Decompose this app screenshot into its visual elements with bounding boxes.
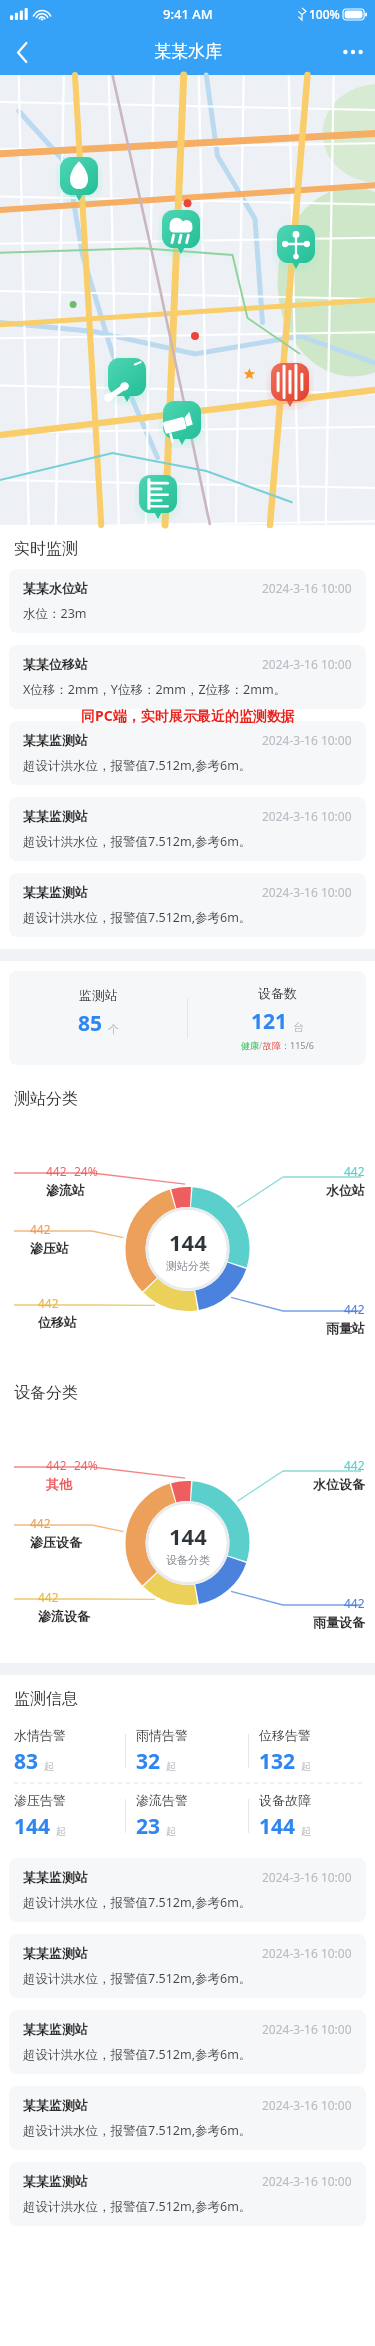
staticText: 某某水库 — [154, 41, 222, 62]
button[interactable]: Back — [0, 30, 44, 74]
staticText: 某某监测站 — [23, 808, 88, 824]
staticText: 位移告警 — [259, 1727, 311, 1743]
staticText: 442 — [38, 1589, 59, 1605]
staticText: 2024-3-16 10:00 — [262, 2021, 352, 2037]
button[interactable]: 某某监测站 — [9, 873, 366, 937]
staticText: 2024-3-16 10:00 — [262, 732, 352, 748]
staticText: 渗流设备 — [38, 1608, 90, 1624]
staticText: 32 — [136, 1747, 161, 1776]
staticText: 144 — [14, 1812, 51, 1841]
button[interactable]: 某某监测站 — [9, 2086, 366, 2150]
button[interactable]: 某某监测站 — [9, 1934, 366, 1998]
staticText: 132 — [259, 1747, 296, 1776]
staticText: 85 — [78, 1009, 103, 1038]
staticText: 起 — [166, 1825, 176, 1838]
staticText: 测站分类 — [166, 1259, 210, 1273]
staticText: 144 — [169, 1521, 207, 1551]
button[interactable]: More options — [331, 30, 375, 74]
staticText: 442 — [344, 1457, 365, 1473]
staticText: / — [259, 1039, 263, 1051]
staticText: 某某监测站 — [23, 884, 88, 900]
button[interactable]: Station marker — [277, 225, 315, 273]
button[interactable]: Station marker — [0, 75, 375, 525]
button[interactable]: 水情告警 — [4, 1727, 125, 1776]
staticText: 渗流告警 — [136, 1792, 188, 1808]
staticText: 2024-3-16 10:00 — [262, 808, 352, 824]
staticText: 超设计洪水位，报警值7.512m,参考6m。 — [23, 2046, 252, 2063]
staticText: 渗压告警 — [14, 1792, 66, 1808]
staticText: 雨量站 — [326, 1320, 365, 1336]
staticText: 设备分类 — [166, 1553, 210, 1567]
staticText: 442 — [344, 1301, 365, 1317]
staticText: 442 — [46, 1163, 67, 1179]
button[interactable]: 某某位移站 — [9, 645, 366, 709]
staticText: 100% — [309, 6, 340, 22]
staticText: 测站分类 — [14, 1089, 78, 1109]
staticText: 起 — [301, 1760, 311, 1773]
staticText: 渗压设备 — [30, 1534, 82, 1550]
button[interactable]: 某某监测站 — [9, 1858, 366, 1922]
staticText: 起 — [301, 1825, 311, 1838]
button[interactable]: Station marker — [60, 157, 98, 205]
staticText: 雨量设备 — [313, 1614, 365, 1630]
staticText: 故障 — [263, 1040, 281, 1051]
staticText: 121 — [251, 1007, 288, 1036]
staticText: 水位站 — [326, 1182, 365, 1198]
button[interactable]: 监测站 — [9, 971, 366, 1065]
staticText: 某某位移站 — [23, 656, 88, 672]
button[interactable]: 渗流告警 — [126, 1792, 248, 1841]
staticText: 某某监测站 — [23, 2021, 88, 2037]
staticText: 24% — [74, 1457, 98, 1473]
staticText: 水位设备 — [313, 1476, 365, 1492]
staticText: 442 — [30, 1221, 51, 1237]
staticText: 起 — [166, 1760, 176, 1773]
staticText: 台 — [293, 1020, 304, 1034]
staticText: 某某监测站 — [23, 1945, 88, 1961]
staticText: 起 — [44, 1760, 54, 1773]
staticText: 超设计洪水位，报警值7.512m,参考6m。 — [23, 1894, 252, 1911]
button[interactable]: 设备故障 — [249, 1792, 371, 1841]
button[interactable]: 位移告警 — [249, 1727, 371, 1776]
button[interactable]: 某某监测站 — [9, 2010, 366, 2074]
staticText: 某某监测站 — [23, 1869, 88, 1885]
staticText: 超设计洪水位，报警值7.512m,参考6m。 — [23, 833, 252, 850]
staticText: 设备故障 — [259, 1792, 311, 1808]
staticText: 实时监测 — [14, 539, 78, 559]
staticText: 23 — [136, 1812, 161, 1841]
staticText: 442 — [38, 1295, 59, 1311]
button[interactable]: 雨情告警 — [126, 1727, 248, 1776]
staticText: 渗流站 — [46, 1182, 85, 1198]
staticText: 2024-3-16 10:00 — [262, 580, 352, 596]
button[interactable]: Station marker — [271, 363, 309, 411]
button[interactable]: 442 — [0, 1119, 375, 1369]
staticText: 渗压站 — [30, 1240, 69, 1256]
button[interactable]: 442 — [0, 1413, 375, 1663]
staticText: 144 — [169, 1227, 207, 1257]
staticText: 水位：23m — [23, 605, 87, 622]
staticText: 2024-3-16 10:00 — [262, 2173, 352, 2189]
staticText: 24% — [74, 1163, 98, 1179]
button[interactable]: 某某监测站 — [9, 2162, 366, 2226]
staticText: 2024-3-16 10:00 — [262, 2097, 352, 2113]
staticText: 2024-3-16 10:00 — [262, 1869, 352, 1885]
staticText: 起 — [56, 1825, 66, 1838]
button[interactable]: Station marker — [162, 210, 200, 258]
button[interactable]: Station marker — [139, 475, 177, 523]
button[interactable]: Station marker — [163, 401, 201, 449]
staticText: 442 — [344, 1595, 365, 1611]
staticText: 超设计洪水位，报警值7.512m,参考6m。 — [23, 2198, 252, 2215]
staticText: 144 — [259, 1812, 296, 1841]
staticText: 水情告警 — [14, 1727, 66, 1743]
staticText: 2024-3-16 10:00 — [262, 656, 352, 672]
staticText: 健康 — [241, 1040, 259, 1051]
button[interactable]: Station marker — [108, 358, 146, 406]
button[interactable]: 某某监测站 — [9, 721, 366, 785]
button[interactable]: 某某水位站 — [9, 569, 366, 633]
staticText: 个 — [108, 1022, 119, 1036]
staticText: X位移：2mm，Y位移：2mm，Z位移：2mm。 — [23, 681, 287, 698]
button[interactable]: 渗压告警 — [4, 1792, 125, 1841]
staticText: 超设计洪水位，报警值7.512m,参考6m。 — [23, 909, 252, 926]
button[interactable]: 某某监测站 — [9, 797, 366, 861]
staticText: 雨情告警 — [136, 1727, 188, 1743]
staticText: 同PC端，实时展示最近的监测数据 — [81, 706, 295, 725]
